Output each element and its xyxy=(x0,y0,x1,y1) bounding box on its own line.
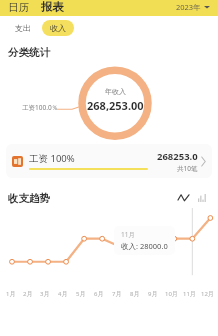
staticText: 收入 xyxy=(50,23,66,33)
staticText: 3月 xyxy=(40,290,50,298)
staticText: 年收入 xyxy=(105,87,126,96)
button[interactable]: 工资 100% xyxy=(6,144,212,178)
staticText: 268253.0 xyxy=(157,150,198,163)
staticText: 2023年 xyxy=(176,2,201,12)
staticText: 268,253.00 xyxy=(87,98,144,113)
staticText: 5月 xyxy=(76,290,86,298)
staticText: 日历 xyxy=(8,1,29,14)
staticText: 8月 xyxy=(130,290,140,298)
staticText: 共10笔 xyxy=(177,164,198,173)
button[interactable]: 报表 xyxy=(39,0,66,14)
staticText: 支出 xyxy=(15,23,31,33)
staticText: 收支趋势 xyxy=(8,192,50,205)
staticText: 收入: 28000.0 xyxy=(121,241,168,251)
button[interactable]: Bar chart xyxy=(194,190,210,206)
staticText: 11月 xyxy=(121,230,135,239)
staticText: 工资 100% xyxy=(29,152,75,165)
staticText: 6月 xyxy=(94,290,104,298)
staticText: 11月 xyxy=(183,290,196,298)
staticText: 2月 xyxy=(23,290,33,298)
staticText: 工资100.0％ xyxy=(22,103,59,112)
staticText: 7月 xyxy=(112,290,122,298)
staticText: 10月 xyxy=(165,290,178,298)
staticText: 4月 xyxy=(58,290,68,298)
staticText: 12月 xyxy=(201,290,214,298)
button[interactable]: 日历 xyxy=(6,1,31,14)
button[interactable]: 收入 xyxy=(42,20,74,36)
staticText: 1月 xyxy=(6,290,16,298)
button[interactable]: 支出 xyxy=(8,20,38,36)
button[interactable]: Line chart xyxy=(175,190,191,206)
staticText: 报表 xyxy=(41,0,64,14)
staticText: 分类统计 xyxy=(8,46,50,59)
button[interactable]: 2023年 xyxy=(174,1,212,13)
staticText: 9月 xyxy=(148,290,158,298)
